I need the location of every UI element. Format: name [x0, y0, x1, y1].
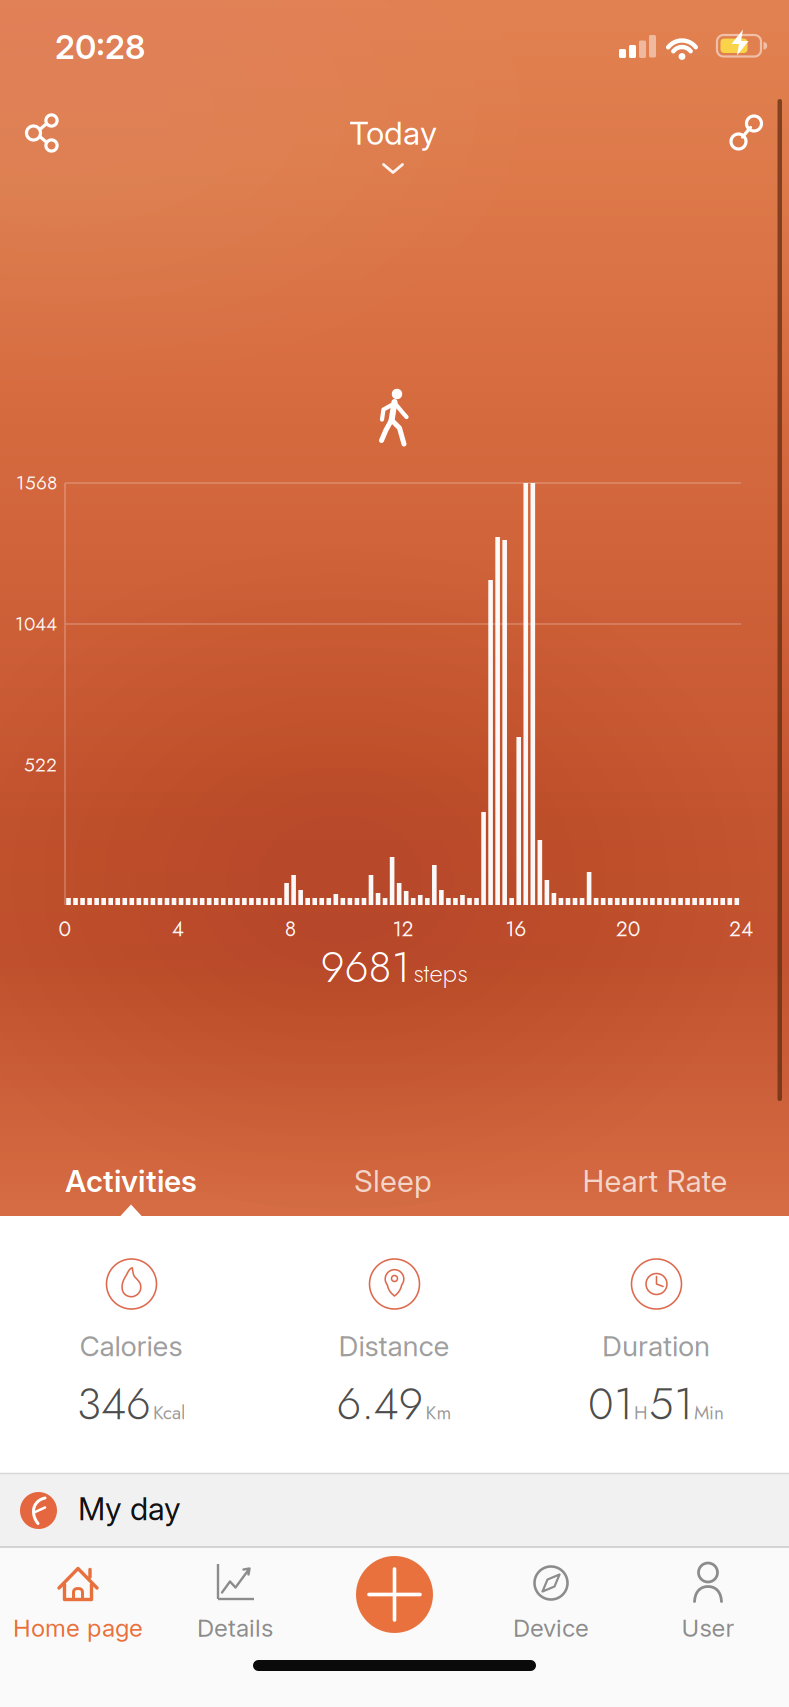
staticText: Home page	[13, 1613, 143, 1642]
staticText: 12	[392, 914, 413, 944]
staticText: My day	[78, 1490, 181, 1528]
staticText: Kcal	[153, 1399, 185, 1426]
staticText: Activities	[65, 1163, 197, 1199]
staticText: 1568	[16, 469, 57, 497]
staticText: 1044	[15, 610, 57, 638]
staticText: 01	[588, 1372, 633, 1436]
staticText: 9681	[320, 936, 410, 998]
staticText: 20:28	[55, 27, 145, 67]
staticText: 16	[505, 914, 526, 944]
staticText: User	[681, 1613, 734, 1642]
staticText: Device	[513, 1613, 589, 1642]
staticText: 8	[285, 914, 296, 944]
staticText: 20	[616, 914, 641, 944]
staticText: Heart Rate	[582, 1163, 727, 1199]
staticText: Km	[425, 1399, 451, 1426]
staticText: Sleep	[354, 1163, 432, 1199]
staticText: Details	[197, 1613, 273, 1642]
staticText: 6.49	[336, 1372, 423, 1436]
staticText: 522	[24, 751, 57, 779]
staticText: 51	[649, 1372, 693, 1436]
staticText: 24	[729, 914, 753, 944]
staticText: Calories	[79, 1329, 182, 1363]
staticText: Today	[349, 114, 437, 152]
staticText: Duration	[602, 1329, 710, 1363]
staticText: steps	[413, 954, 467, 992]
staticText: 0	[58, 914, 71, 944]
staticText: 4	[172, 914, 184, 944]
staticText: Distance	[338, 1329, 449, 1363]
staticText: 346	[77, 1372, 151, 1436]
staticText: Min	[694, 1399, 724, 1426]
staticText: H	[634, 1399, 648, 1426]
